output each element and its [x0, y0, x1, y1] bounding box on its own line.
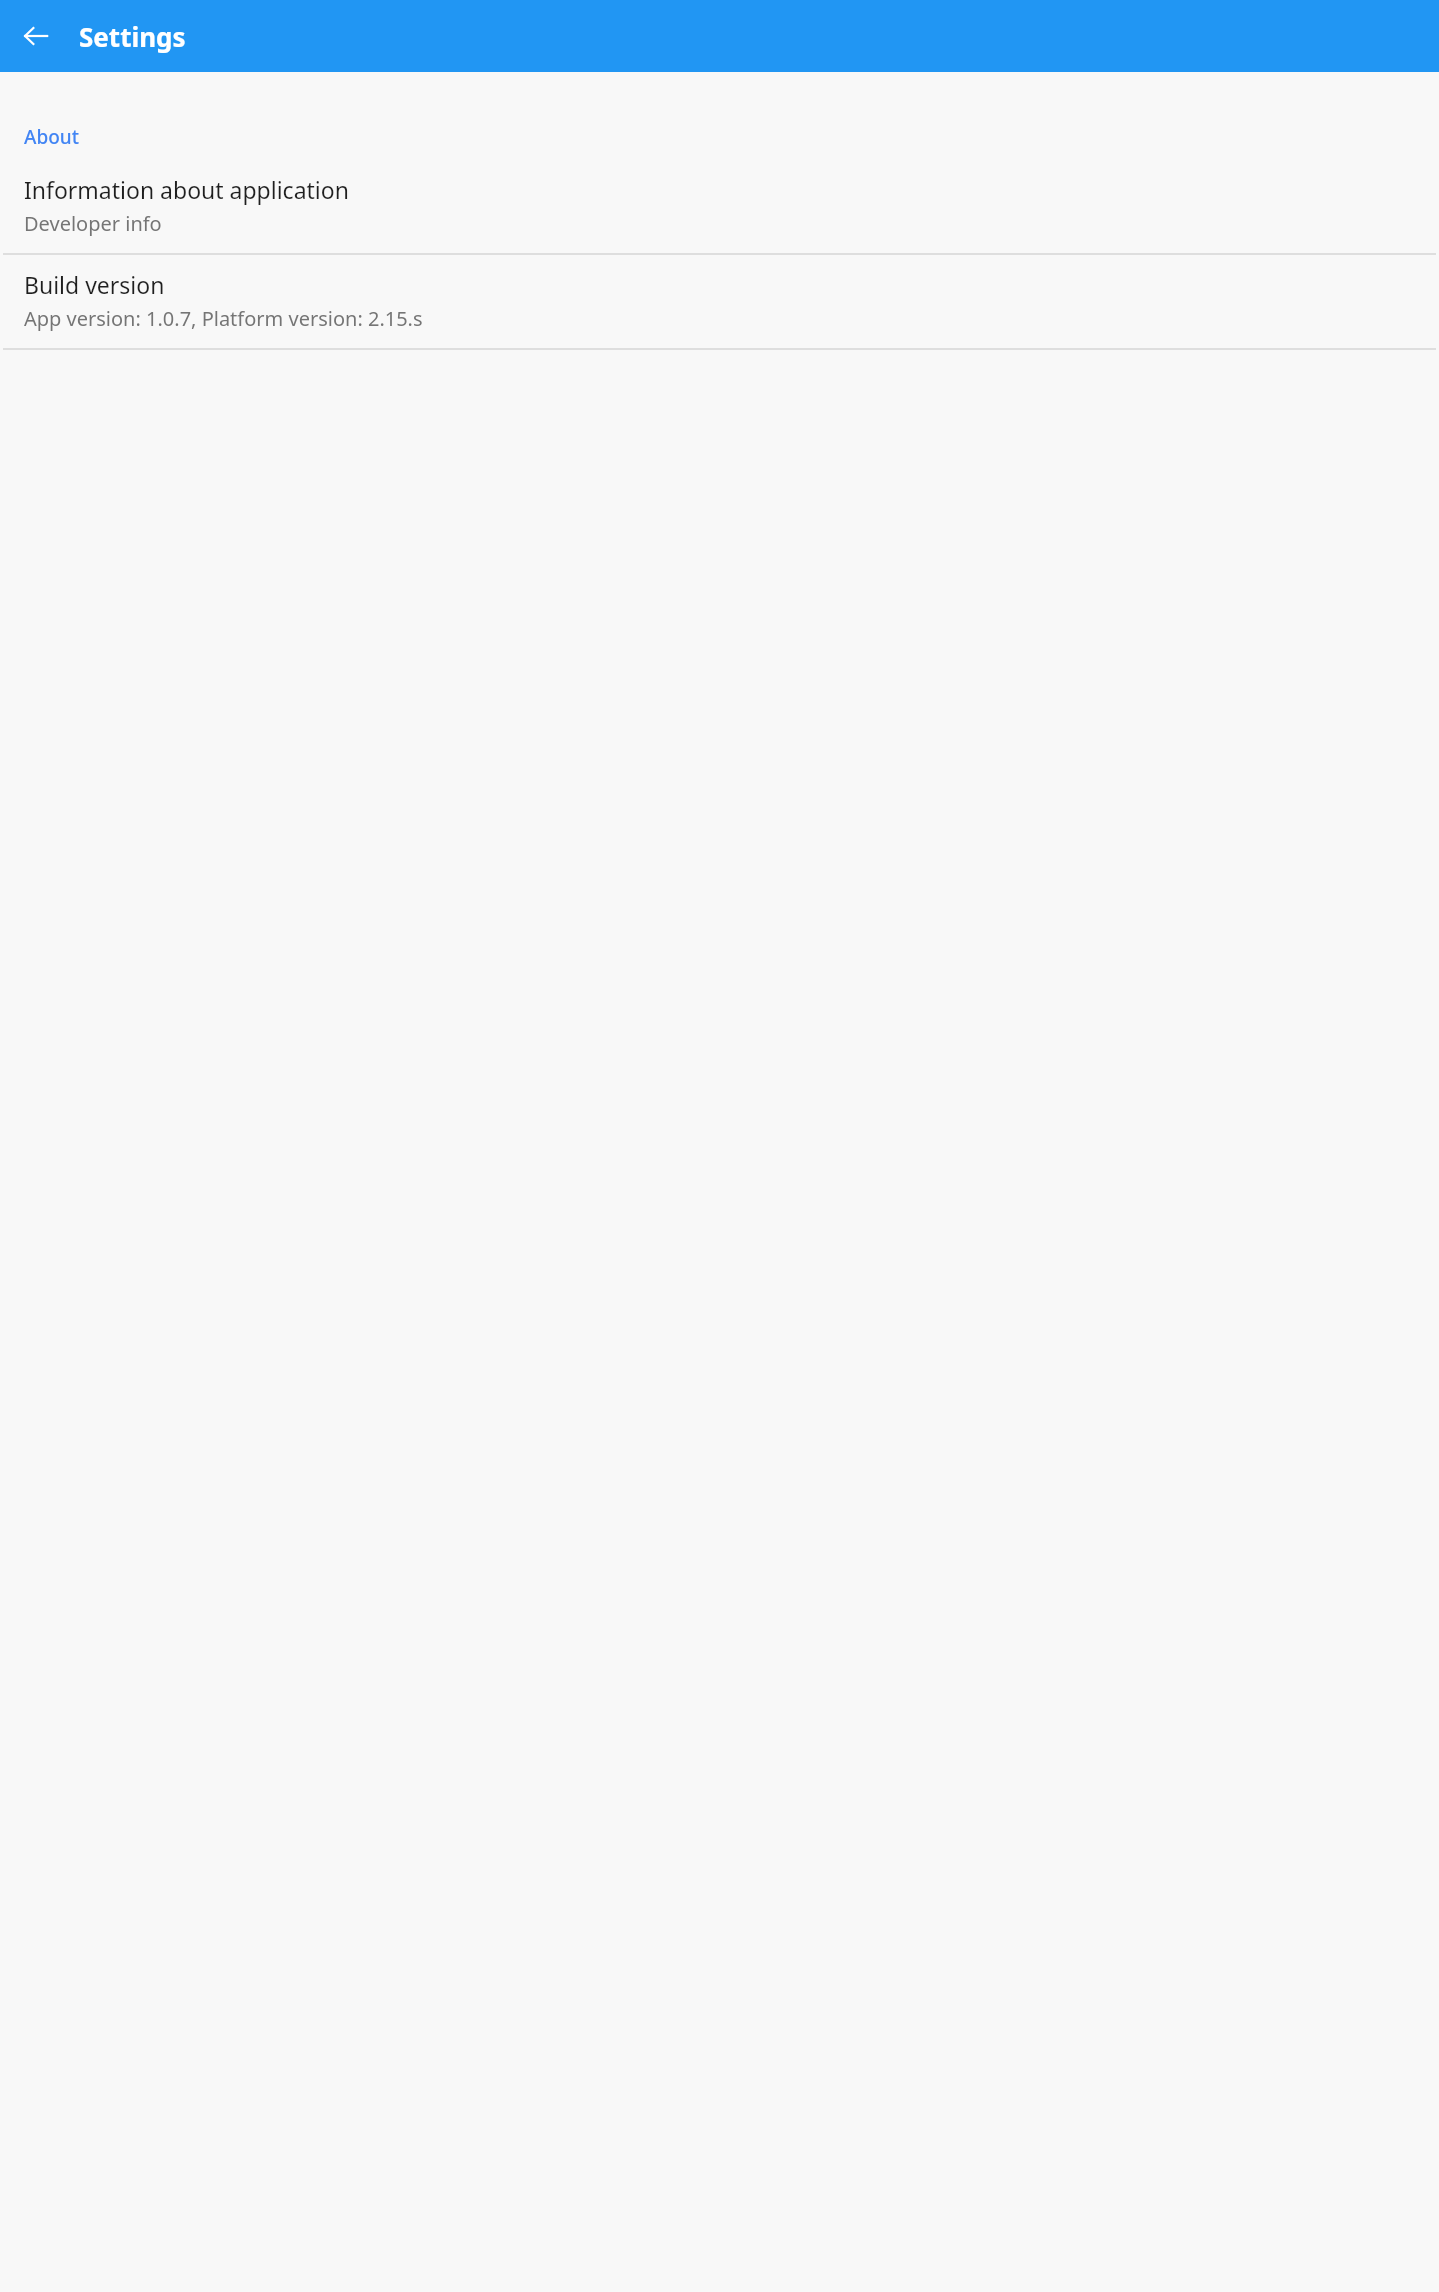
button[interactable]: Information about application [0, 160, 1439, 253]
staticText: About [24, 124, 80, 150]
staticText: Settings [79, 19, 186, 54]
button[interactable]: Back [12, 12, 60, 60]
staticText: Build version [24, 269, 165, 300]
button[interactable]: Build version [0, 255, 1439, 348]
staticText: Information about application [24, 174, 349, 205]
staticText: App version: 1.0.7, Platform version: 2.… [24, 305, 423, 332]
staticText: Developer info [24, 210, 162, 237]
